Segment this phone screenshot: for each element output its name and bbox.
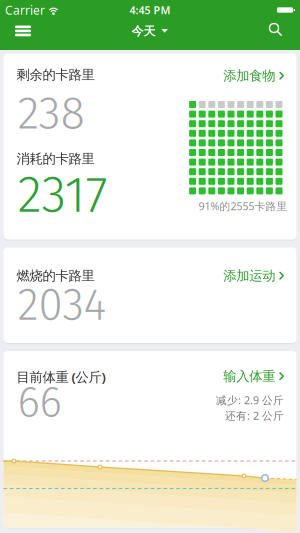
- button[interactable]: 今天: [131, 24, 168, 39]
- button[interactable]: Menu: [15, 25, 31, 36]
- staticText: 今天: [131, 24, 155, 39]
- button[interactable]: 目前体重 (公斤): [3, 351, 296, 529]
- staticText: 还有: 2 公斤: [225, 408, 284, 423]
- button[interactable]: 添加运动: [223, 267, 284, 284]
- staticText: 添加运动: [223, 267, 275, 284]
- staticText: 238: [17, 86, 84, 140]
- staticText: 剩余的卡路里: [16, 66, 94, 83]
- staticText: 4:45 PM: [129, 3, 170, 17]
- staticText: Carrier: [5, 2, 45, 18]
- button[interactable]: 添加食物: [223, 67, 284, 84]
- button[interactable]: 输入体重: [223, 368, 284, 384]
- button[interactable]: Search: [268, 22, 282, 36]
- staticText: 2317: [17, 164, 107, 225]
- staticText: 目前体重 (公斤): [16, 368, 105, 386]
- staticText: 66: [17, 377, 61, 428]
- staticText: 2034: [17, 278, 106, 331]
- button[interactable]: 燃烧的卡路里: [3, 247, 296, 344]
- staticText: 消耗的卡路里: [16, 150, 94, 167]
- staticText: 91%的2555卡路里: [198, 199, 287, 213]
- staticText: 添加食物: [223, 67, 275, 84]
- staticText: 燃烧的卡路里: [16, 267, 94, 284]
- staticText: 输入体重: [223, 368, 275, 384]
- staticText: 减少: 2.9 公斤: [216, 393, 284, 407]
- button[interactable]: 剩余的卡路里: [3, 53, 296, 241]
